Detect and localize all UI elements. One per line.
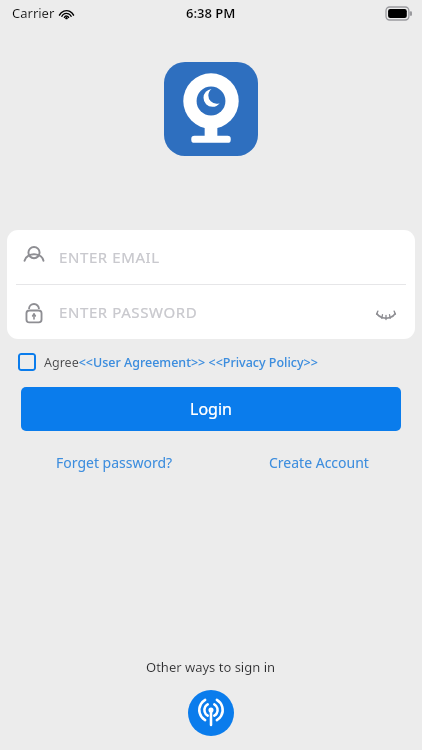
button[interactable]: ENTER EMAIL: [7, 230, 415, 284]
button[interactable]: Show password: [371, 297, 401, 327]
staticText: 6:38 PM: [186, 4, 236, 22]
staticText: ENTER EMAIL: [59, 247, 160, 267]
button[interactable]: Sign in with device broadcast: [188, 690, 234, 736]
staticText: Create Account: [269, 453, 369, 472]
button[interactable]: Create Account: [269, 453, 369, 472]
staticText: Carrier: [12, 4, 55, 22]
button[interactable]: ENTER PASSWORD: [7, 285, 415, 339]
staticText: ENTER PASSWORD: [59, 302, 198, 322]
button[interactable]: Login: [21, 387, 401, 431]
staticText: Forget password?: [56, 453, 173, 472]
button[interactable]: Agree<<User Agreement>> <<Privacy Policy…: [18, 353, 318, 371]
other: App logo: [164, 62, 258, 156]
staticText: Other ways to sign in: [146, 658, 276, 676]
staticText: Agree<<User Agreement>> <<Privacy Policy…: [44, 354, 318, 371]
staticText: Login: [190, 398, 232, 420]
button[interactable]: Forget password?: [56, 453, 173, 472]
